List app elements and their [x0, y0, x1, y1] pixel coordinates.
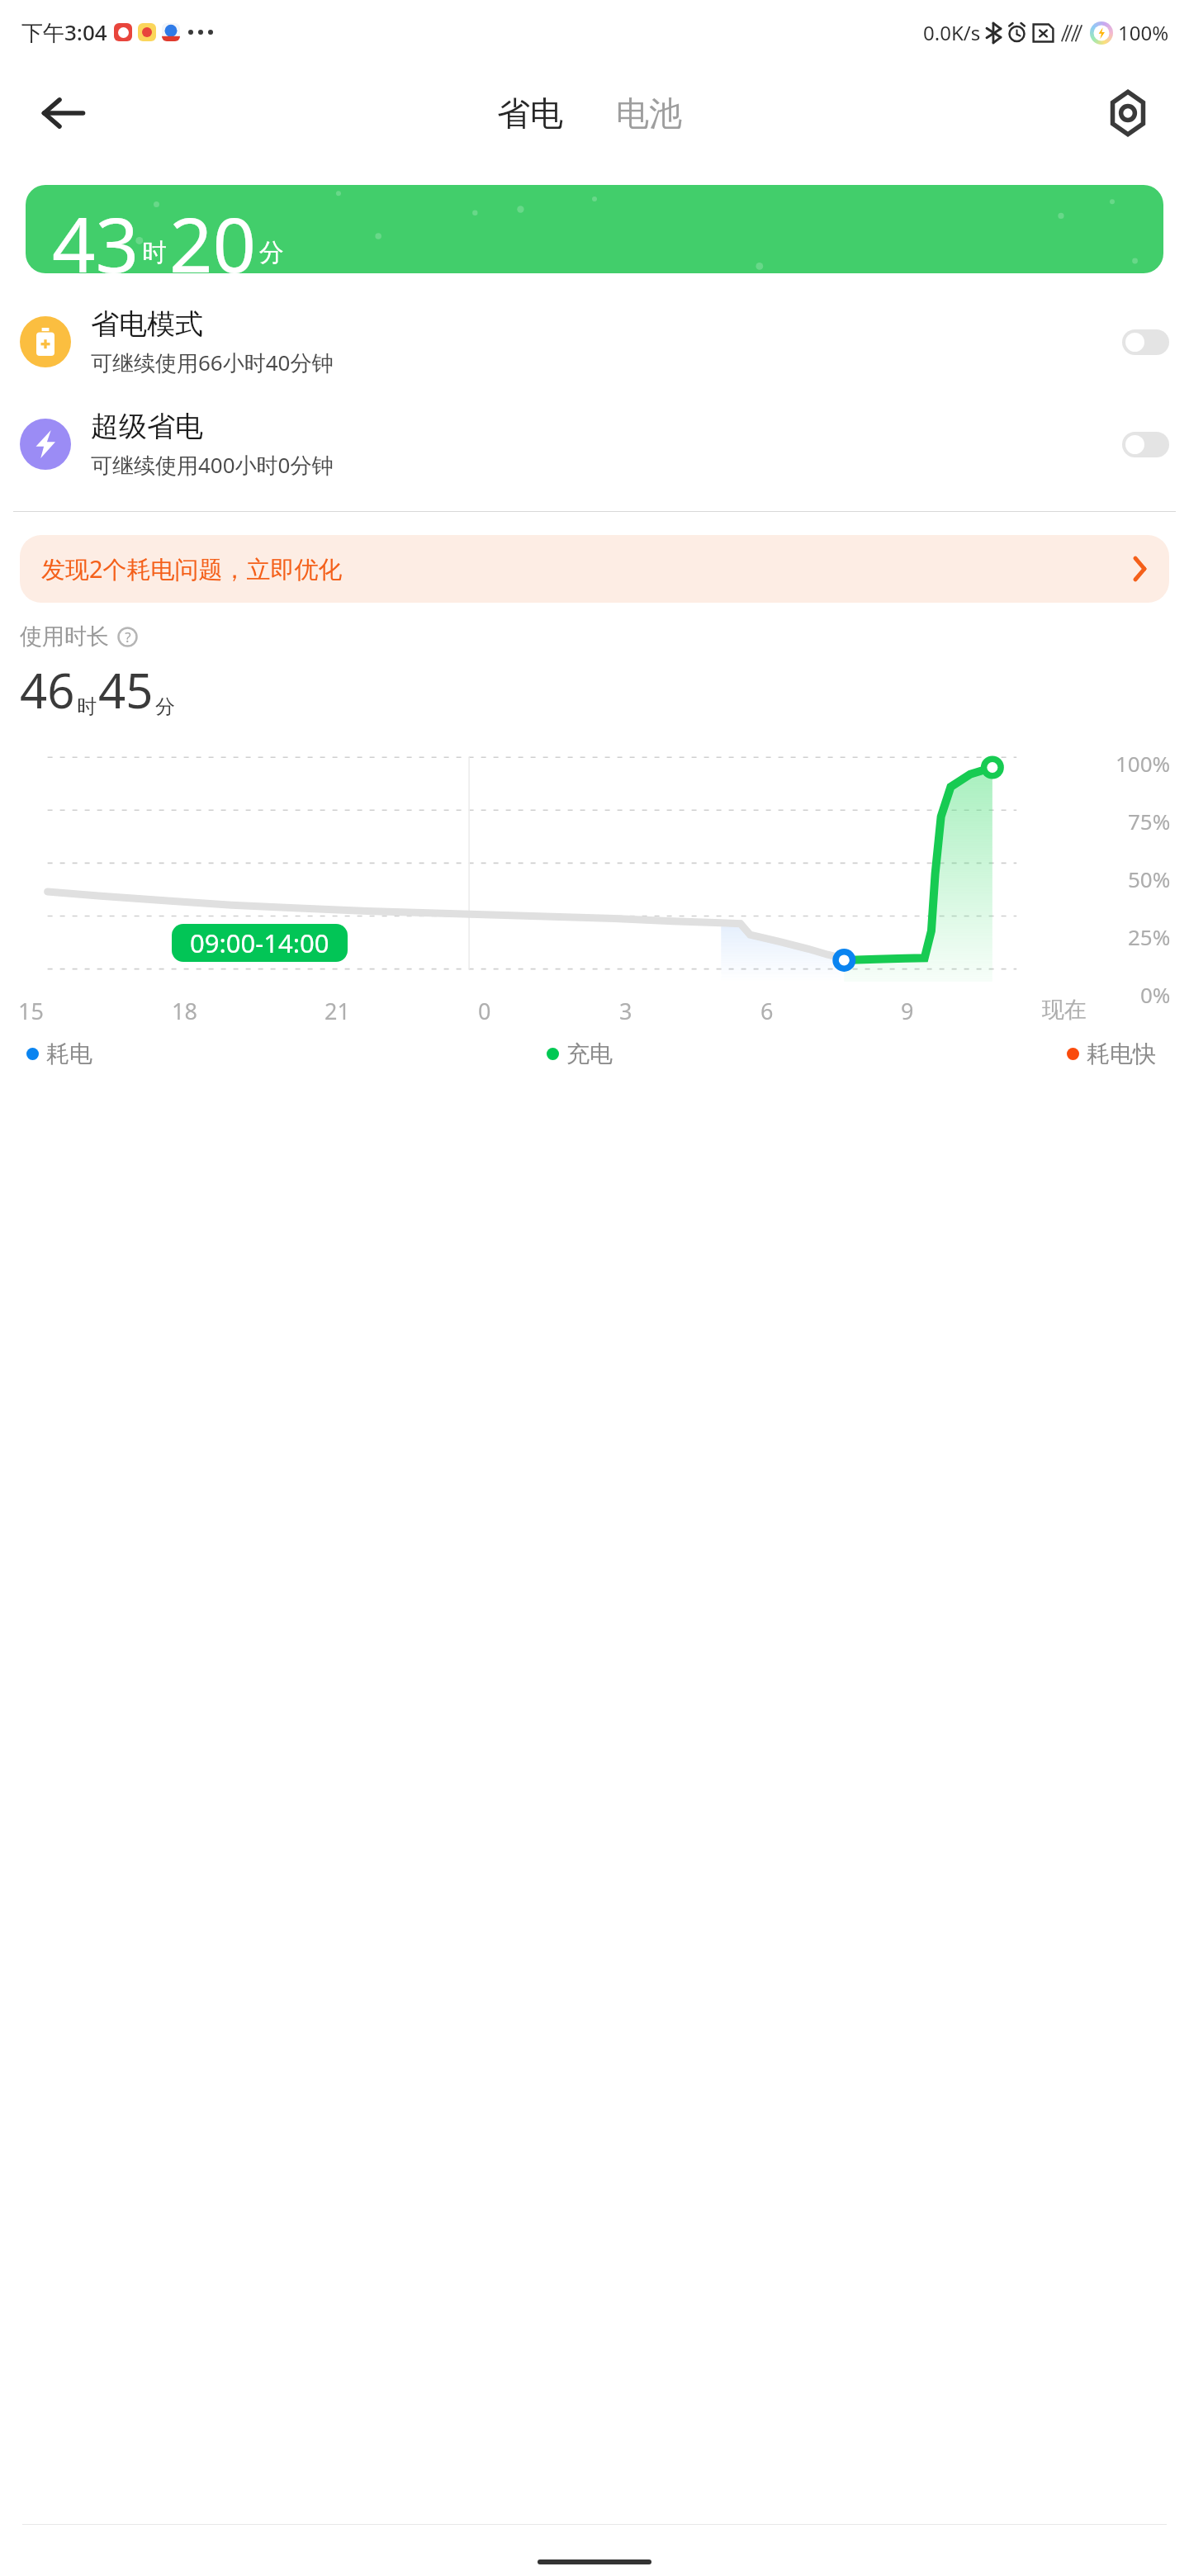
button[interactable]: 耗电: [26, 1039, 92, 1068]
button[interactable]: 09:00-14:00: [172, 924, 348, 962]
staticText: 电池: [616, 92, 682, 134]
staticText: 18: [172, 996, 197, 1026]
staticText: 0: [478, 996, 491, 1026]
staticText: 50%: [1128, 864, 1171, 893]
staticText: 时: [142, 237, 167, 268]
staticText: 现在: [1042, 996, 1087, 1024]
button[interactable]: 省电模式 开关: [1122, 329, 1169, 355]
staticText: 9: [901, 996, 914, 1026]
button[interactable]: 超级省电 开关: [1122, 432, 1169, 457]
staticText: 可继续使用400小时0分钟: [91, 450, 334, 480]
staticText: 下午3:04: [21, 17, 107, 47]
staticText: 100%: [1116, 749, 1171, 778]
staticText: 省电: [497, 92, 563, 134]
staticText: 0.0K/s: [923, 19, 981, 46]
staticText: 46: [20, 657, 75, 722]
staticText: 25%: [1128, 922, 1171, 951]
staticText: 耗电快: [1087, 1039, 1156, 1068]
staticText: 6: [760, 996, 774, 1026]
button[interactable]: 发现2个耗电问题，立即优化: [20, 535, 1169, 603]
staticText: 耗电: [46, 1039, 92, 1068]
staticText: 09:00-14:00: [190, 926, 329, 960]
staticText: 15: [18, 996, 44, 1026]
staticText: 21: [324, 996, 350, 1026]
staticText: 20: [169, 192, 257, 273]
staticText: 时: [77, 694, 97, 719]
button[interactable]: 省电模式: [0, 296, 1189, 387]
staticText: 可继续使用66小时40分钟: [91, 348, 334, 377]
button[interactable]: 说明: [117, 627, 138, 647]
button[interactable]: 超级省电: [0, 399, 1189, 490]
button[interactable]: 43: [26, 185, 1163, 273]
staticText: 使用时长: [20, 623, 109, 651]
staticText: 分: [155, 694, 175, 719]
button[interactable]: 耗电快: [1067, 1039, 1156, 1068]
staticText: 0%: [1140, 980, 1171, 1009]
staticText: 100%: [1118, 19, 1169, 46]
button[interactable]: 省电: [489, 86, 571, 140]
staticText: 75%: [1128, 807, 1171, 836]
button[interactable]: Back: [38, 88, 89, 139]
button[interactable]: 充电: [547, 1039, 613, 1068]
staticText: 发现2个耗电问题，立即优化: [41, 552, 1131, 585]
staticText: 45: [98, 657, 154, 722]
button[interactable]: Settings: [1105, 90, 1151, 136]
staticText: 分: [259, 237, 284, 268]
staticText: 3: [619, 996, 632, 1026]
staticText: 省电模式: [91, 306, 203, 342]
button[interactable]: 电池: [608, 86, 690, 140]
staticText: 充电: [566, 1039, 613, 1068]
staticText: 超级省电: [91, 409, 203, 444]
staticText: ?: [125, 627, 131, 646]
staticText: 43: [52, 192, 140, 273]
